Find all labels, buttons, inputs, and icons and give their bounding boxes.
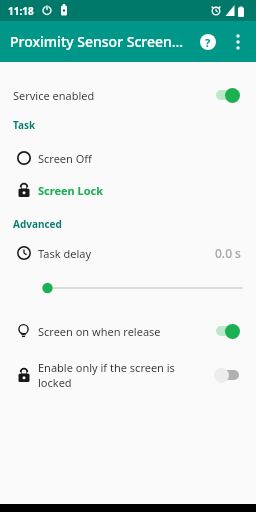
- button[interactable]: Service enabled: [0, 80, 256, 110]
- staticText: Screen Lock: [38, 183, 104, 198]
- staticText: Enable only if the screen is locked: [38, 360, 214, 390]
- button[interactable]: [232, 32, 244, 52]
- button[interactable]: Enable only if the screen is locked: [0, 357, 256, 393]
- staticText: ?: [205, 35, 211, 50]
- staticText: Advanced: [13, 217, 62, 231]
- staticText: Service enabled: [13, 88, 214, 103]
- button[interactable]: [214, 367, 240, 383]
- button[interactable]: Screen Lock: [0, 177, 256, 203]
- button[interactable]: ?: [200, 34, 216, 50]
- button[interactable]: Screen on when release: [0, 318, 256, 344]
- staticText: Screen on when release: [38, 324, 214, 339]
- staticText: Screen Off: [38, 151, 92, 166]
- staticText: Task delay: [38, 246, 215, 261]
- button[interactable]: Screen Off: [0, 145, 256, 171]
- staticText: 0.0 s: [215, 245, 241, 261]
- button[interactable]: Task delay: [0, 240, 256, 266]
- button[interactable]: [0, 278, 256, 298]
- button[interactable]: [214, 323, 240, 339]
- staticText: Proximity Sensor Screen…: [10, 32, 184, 51]
- button[interactable]: [214, 87, 240, 103]
- staticText: Task: [13, 118, 36, 132]
- staticText: 11:18: [8, 4, 34, 18]
